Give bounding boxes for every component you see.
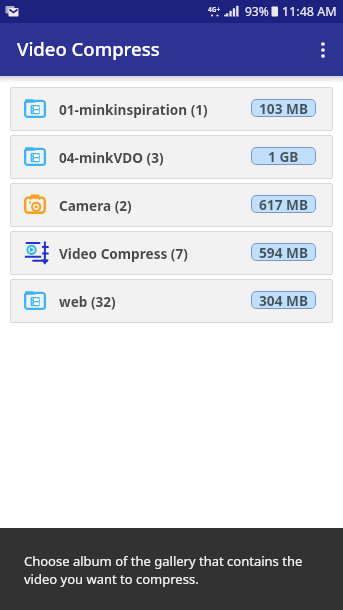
staticText: Choose album of the gallery that contain… — [24, 552, 303, 588]
staticText: 1 GB — [268, 147, 299, 165]
staticText: Video Compress — [17, 36, 160, 61]
button[interactable]: 04-minkVDO (3) — [10, 135, 333, 179]
staticText: 11:48 AM — [282, 3, 337, 20]
staticText: 304 MB — [259, 291, 309, 309]
button[interactable]: web (32) — [10, 279, 333, 323]
staticText: 594 MB — [259, 243, 309, 261]
staticText: 93% — [245, 3, 269, 19]
staticText: 103 MB — [259, 99, 309, 117]
staticText: Camera (2) — [59, 196, 132, 215]
button[interactable]: 01-minkinspiration (1) — [10, 87, 333, 131]
staticText: Video Compress (7) — [59, 244, 188, 263]
staticText: 04-minkVDO (3) — [59, 148, 164, 167]
staticText: web (32) — [59, 292, 116, 311]
button[interactable]: Camera (2) — [10, 183, 333, 227]
staticText: 617 MB — [259, 195, 309, 213]
button[interactable]: More options — [295, 26, 343, 74]
button[interactable]: Video Compress (7) — [10, 231, 333, 275]
staticText: 01-minkinspiration (1) — [59, 100, 208, 119]
staticText: 4G+ — [208, 5, 221, 14]
